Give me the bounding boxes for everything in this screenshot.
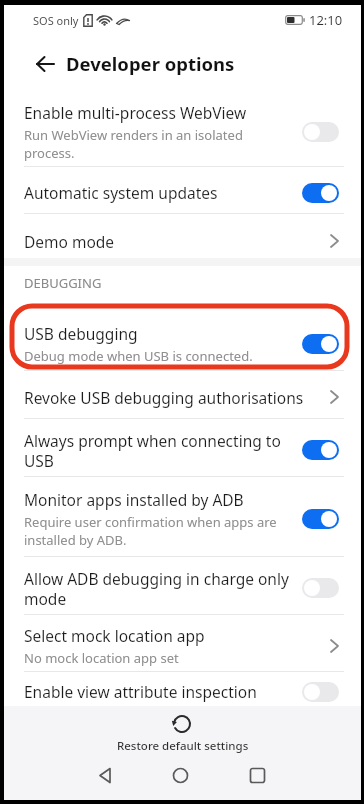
staticText: Automatic system updates [24,182,218,203]
button[interactable] [302,509,339,529]
staticText: Select mock location app [24,625,205,646]
button[interactable] [302,682,339,702]
button[interactable] [302,334,339,354]
button[interactable] [249,767,266,784]
button[interactable]: Monitor apps installed by ADB [4,477,361,556]
button[interactable]: Select mock location app [4,615,361,671]
staticText: Require user confirmation when apps are … [24,513,277,549]
button[interactable]: Allow ADB debugging in charge only mode [4,557,361,614]
button[interactable] [302,578,339,598]
button[interactable]: Enable view attribute inspection [4,672,361,706]
button[interactable] [171,713,193,735]
button[interactable] [302,183,339,203]
button[interactable]: Enable multi-process WebView [4,92,361,166]
staticText: Enable view attribute inspection [24,681,257,702]
staticText: Enable multi-process WebView [24,102,247,123]
staticText: DEBUGGING [24,274,102,292]
staticText: Run WebView renders in an isolated proce… [24,126,243,162]
button[interactable]: Automatic system updates [4,167,361,213]
staticText: No mock location app set [24,649,179,667]
staticText: Revoke USB debugging authorisations [24,387,304,408]
staticText: Demo mode [24,231,115,252]
button[interactable]: Always prompt when connecting to USB [4,419,361,476]
staticText: 12:10 [309,11,343,29]
staticText: Developer options [66,51,235,76]
staticText: Monitor apps installed by ADB [24,489,244,510]
button[interactable] [97,767,114,784]
button[interactable] [36,56,55,72]
button[interactable] [302,122,339,142]
staticText: USB debugging [24,323,138,344]
staticText: Restore default settings [117,738,249,754]
button[interactable]: Demo mode [4,214,361,258]
button[interactable] [172,767,189,784]
staticText: SOS only [33,13,79,28]
button[interactable]: Revoke USB debugging authorisations [4,371,361,418]
button[interactable]: USB debugging [4,298,361,370]
staticText: Always prompt when connecting to USB [24,430,281,471]
staticText: Allow ADB debugging in charge only mode [24,568,289,609]
staticText: Debug mode when USB is connected. [24,347,253,365]
button[interactable] [302,440,339,460]
